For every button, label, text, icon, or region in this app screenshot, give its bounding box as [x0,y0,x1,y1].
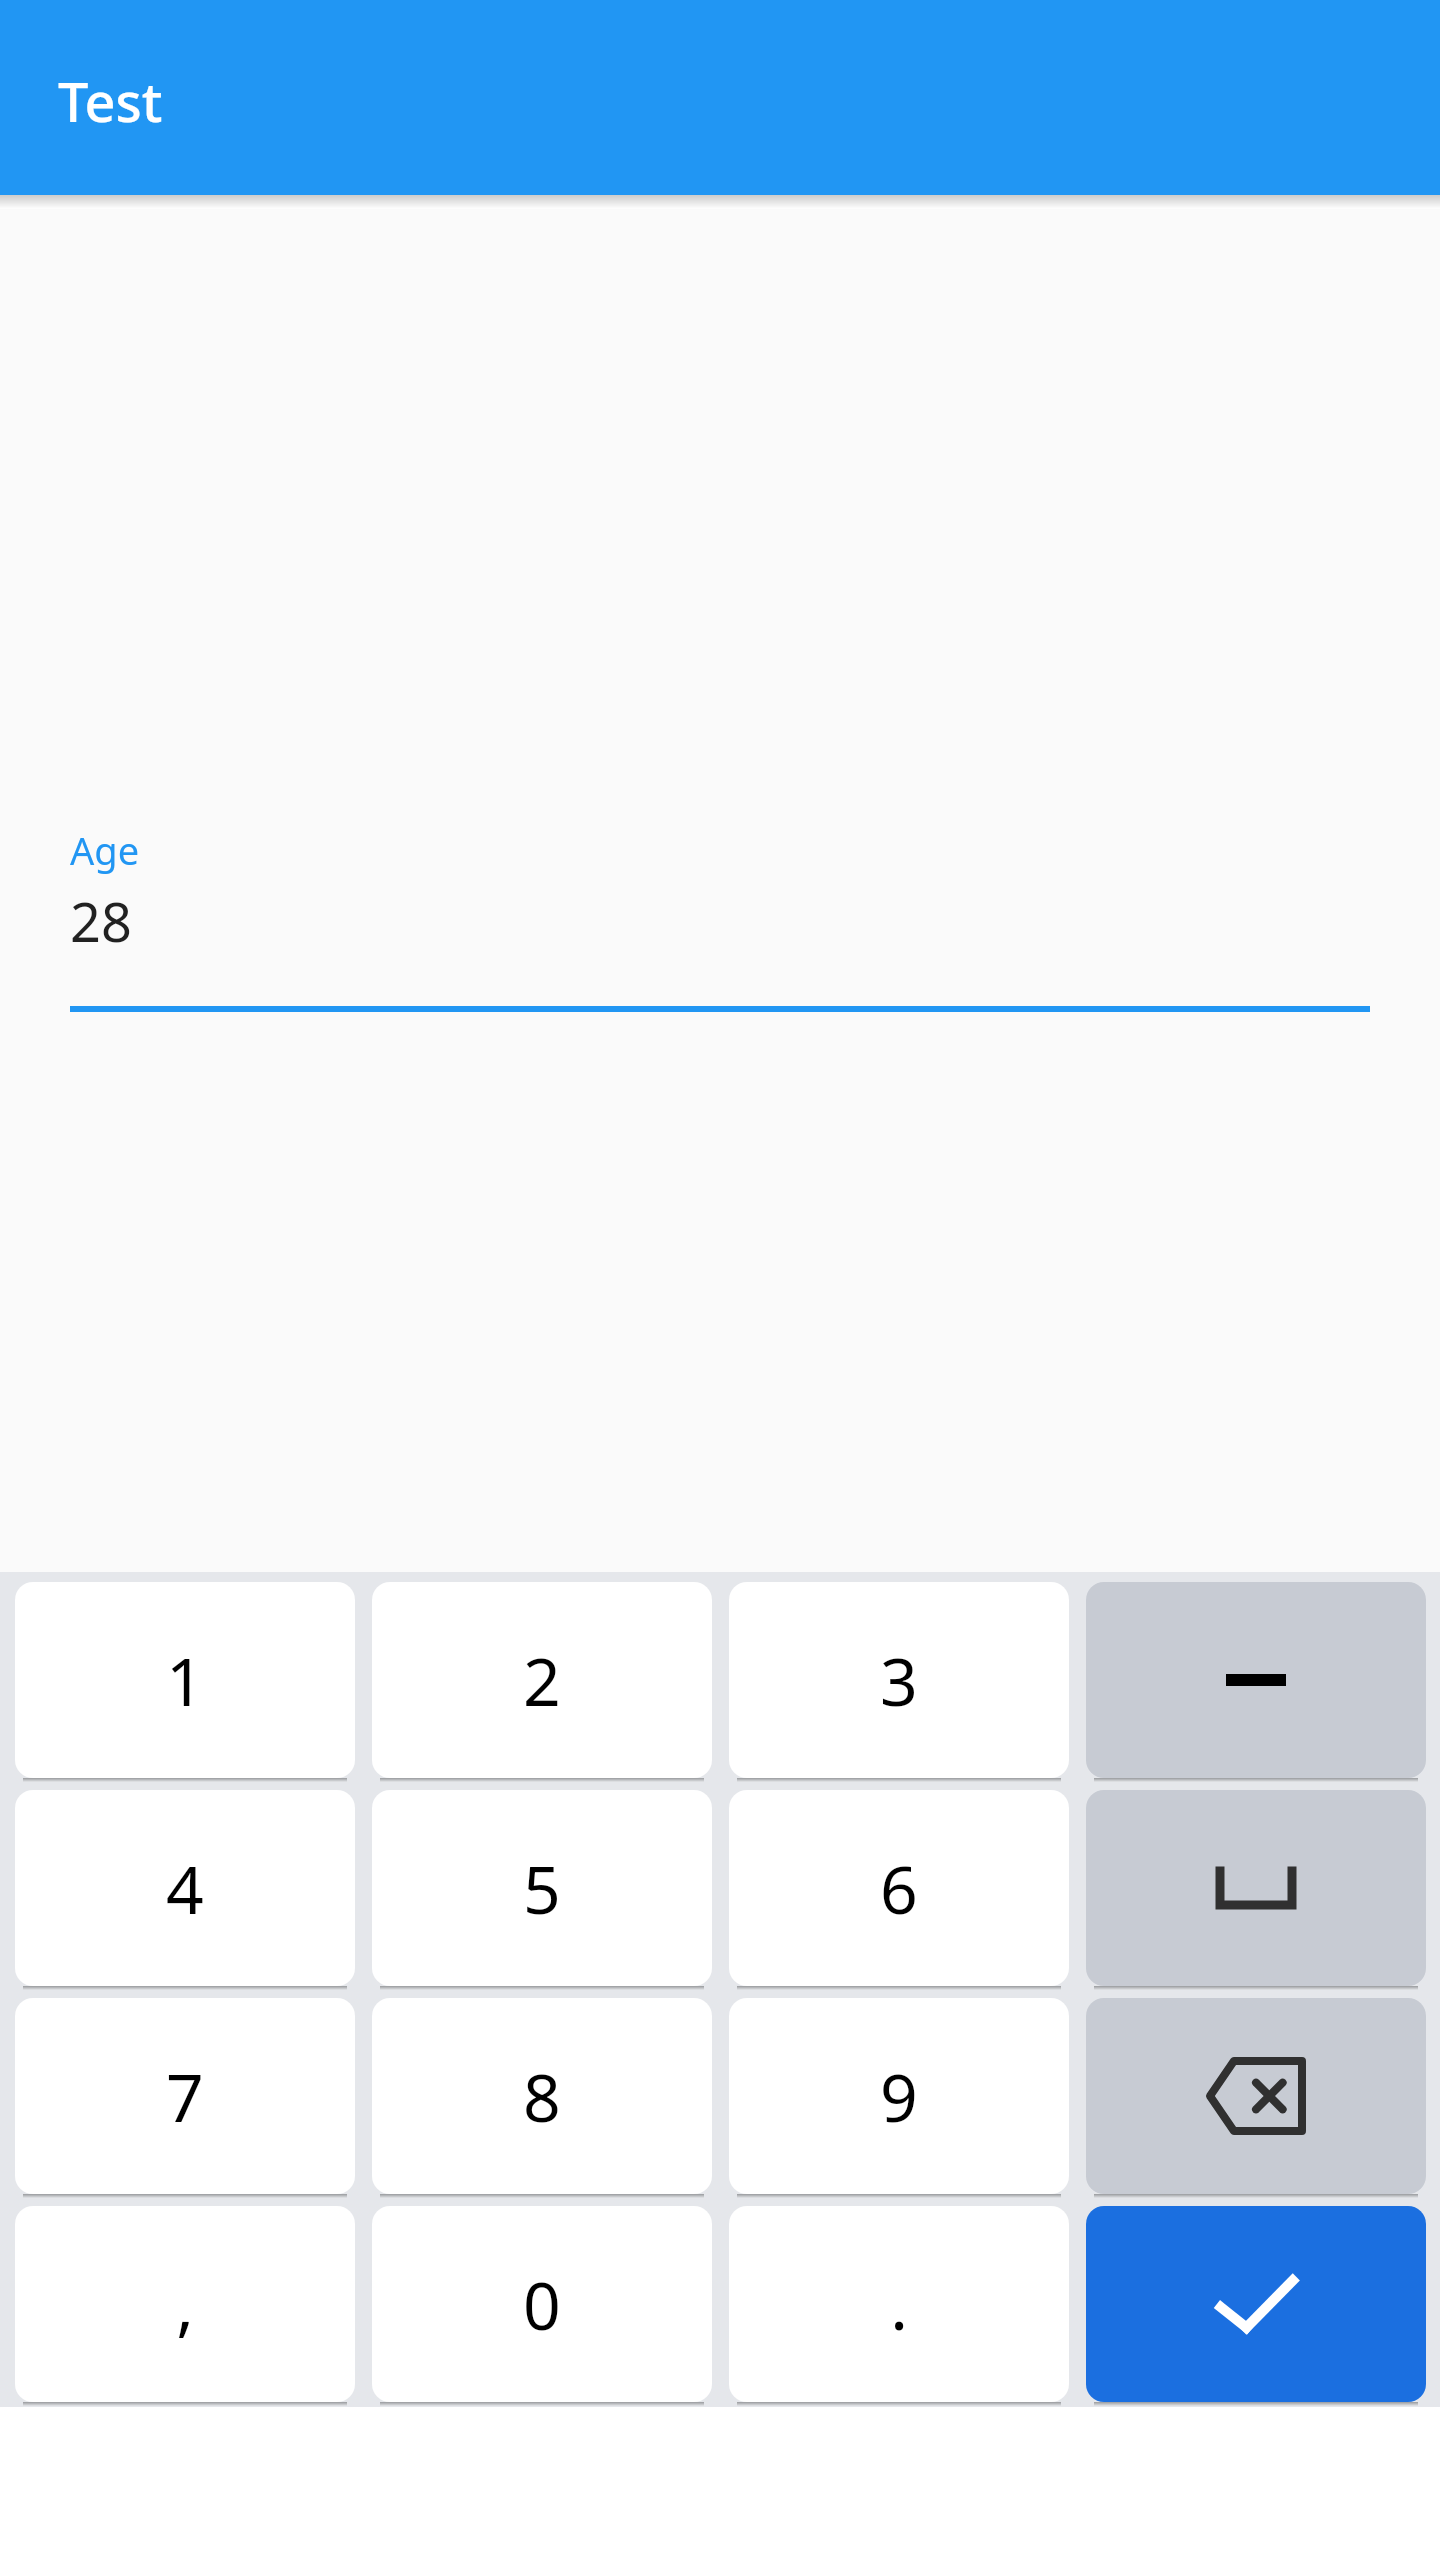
button[interactable]: 5 [372,1790,712,1986]
button[interactable]: Backspace [1086,1998,1426,2194]
button[interactable]: 8 [372,1998,712,2194]
button[interactable]: 6 [729,1790,1069,1986]
staticText: 6 [880,1843,918,1933]
staticText: 0 [523,2259,561,2349]
staticText: Test [58,64,163,138]
button[interactable]: 2 [372,1582,712,1778]
staticText: 28 [70,884,132,958]
staticText: 4 [166,1843,204,1933]
staticText: 7 [166,2051,204,2141]
button[interactable]: Done [1086,2206,1426,2402]
button[interactable]: 4 [15,1790,355,1986]
staticText: 1 [166,1635,204,1725]
button[interactable]: 7 [15,1998,355,2194]
staticText: 2 [523,1635,561,1725]
button[interactable]: 0 [372,2206,712,2402]
button[interactable]: . [729,2206,1069,2402]
button[interactable]: Space [1086,1790,1426,1986]
button[interactable]: 9 [729,1998,1069,2194]
staticText: , [176,2259,194,2349]
button[interactable]: 1 [15,1582,355,1778]
staticText: 9 [880,2051,918,2141]
staticText: 8 [523,2051,561,2141]
staticText: 3 [880,1635,918,1725]
button[interactable]: Minus [1086,1582,1426,1778]
button[interactable]: Age [70,824,1370,1012]
staticText: . [890,2259,908,2349]
button[interactable]: , [15,2206,355,2402]
button[interactable]: 3 [729,1582,1069,1778]
staticText: 5 [523,1843,561,1933]
staticText: Age [70,824,140,876]
